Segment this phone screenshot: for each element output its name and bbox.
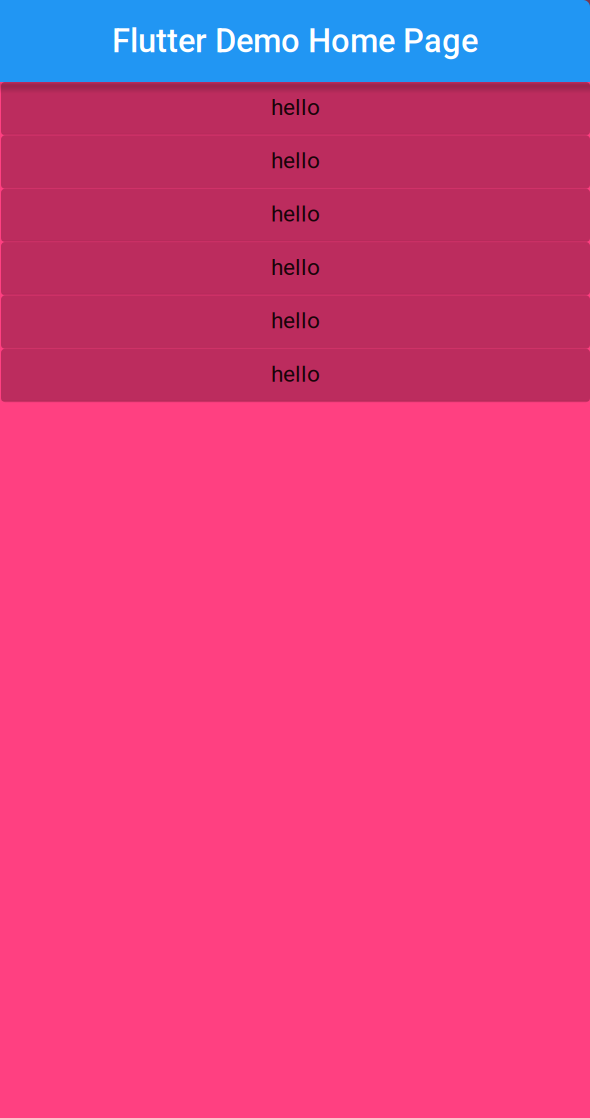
button[interactable]: hello	[0, 295, 590, 349]
staticText: Flutter Demo Home Page	[112, 22, 478, 60]
staticText: hello	[271, 147, 320, 174]
staticText: hello	[271, 201, 320, 227]
button[interactable]: hello	[0, 135, 590, 189]
staticText: hello	[271, 254, 320, 280]
button[interactable]: hello	[0, 242, 590, 295]
button[interactable]: hello	[0, 189, 590, 242]
staticText: hello	[271, 94, 320, 120]
button[interactable]: hello	[0, 349, 590, 402]
button[interactable]: hello	[0, 82, 590, 135]
staticText: hello	[271, 361, 320, 387]
staticText: hello	[271, 307, 320, 334]
